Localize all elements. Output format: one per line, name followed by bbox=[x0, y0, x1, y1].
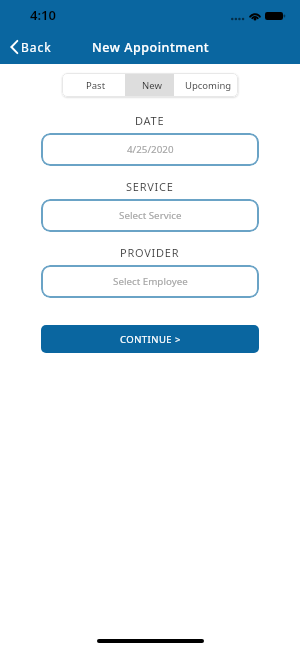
staticText: 4/25/2020 bbox=[127, 143, 174, 156]
button[interactable]: Past bbox=[62, 73, 125, 97]
staticText: SERVICE bbox=[126, 179, 174, 194]
staticText: DATE bbox=[135, 113, 165, 128]
button[interactable]: CONTINUE > bbox=[41, 325, 259, 353]
button[interactable]: Back bbox=[0, 36, 60, 58]
staticText: Back bbox=[21, 39, 52, 55]
button[interactable]: 4/25/2020 bbox=[41, 133, 259, 166]
staticText: New bbox=[142, 79, 162, 92]
staticText: Upcoming bbox=[185, 79, 232, 92]
staticText: Past bbox=[86, 79, 106, 92]
staticText: Select Employee bbox=[113, 275, 188, 288]
staticText: 4:10 bbox=[30, 6, 56, 24]
staticText: CONTINUE > bbox=[120, 333, 181, 346]
button[interactable]: Select Employee bbox=[41, 265, 259, 298]
button[interactable]: Select Service bbox=[41, 199, 259, 232]
button[interactable]: New bbox=[125, 73, 174, 97]
staticText: New Appointment bbox=[92, 39, 210, 56]
button[interactable]: Upcoming bbox=[174, 73, 238, 97]
staticText: Select Service bbox=[119, 209, 182, 222]
staticText: PROVIDER bbox=[120, 245, 180, 260]
